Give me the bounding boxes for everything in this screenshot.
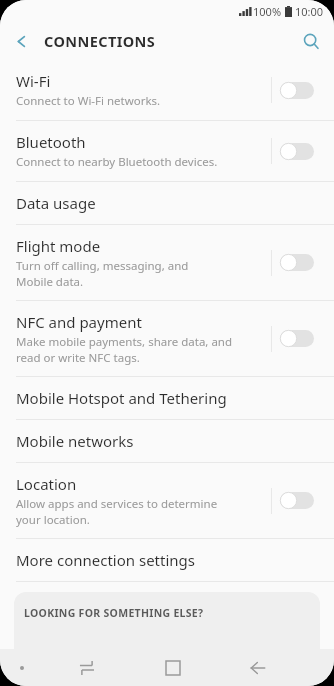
staticText: NFC and payment [16,312,142,332]
staticText: LOOKING FOR SOMETHING ELSE? [24,606,204,620]
staticText: Flight mode [16,236,101,256]
button[interactable]: NFC and payment toggle [272,324,322,353]
staticText: Allow apps and services to determine you… [16,496,218,527]
button[interactable]: Wi-Fi toggle [272,76,322,105]
button[interactable]: Search [294,24,328,58]
button[interactable]: NFC and payment [0,301,334,376]
button[interactable]: Back [4,24,38,58]
button[interactable]: Data usage [0,182,334,224]
button[interactable]: LOOKING FOR SOMETHING ELSE? [14,592,320,649]
staticText: 10:00 [295,4,324,19]
staticText: Mobile Hotspot and Tethering [16,388,227,408]
button[interactable]: Flight mode toggle [272,248,322,277]
staticText: Connect to nearby Bluetooth devices. [16,154,218,170]
button[interactable]: Bluetooth [0,121,334,181]
button[interactable]: Back [215,649,300,686]
staticText: CONNECTIONS [44,31,156,51]
staticText: More connection settings [16,550,195,570]
button[interactable]: Recents [44,649,130,686]
button[interactable]: Location toggle [272,486,322,515]
staticText: Data usage [16,193,96,213]
staticText: Connect to Wi-Fi networks. [16,93,161,109]
staticText: Wi-Fi [16,71,51,91]
staticText: Mobile networks [16,431,134,451]
staticText: Bluetooth [16,132,86,152]
button[interactable]: Bluetooth toggle [272,137,322,166]
button[interactable]: Mobile networks [0,420,334,462]
button[interactable]: Home [130,649,215,686]
staticText: Location [16,474,77,494]
button[interactable]: Wi-Fi [0,60,334,120]
staticText: Turn off calling, messaging, and Mobile … [16,258,189,289]
button[interactable]: More connection settings [0,539,334,581]
button[interactable]: Flight mode [0,225,334,300]
button[interactable]: Mobile Hotspot and Tethering [0,377,334,419]
staticText: Make mobile payments, share data, and re… [16,334,233,365]
button[interactable]: Location [0,463,334,538]
staticText: 100% [253,4,282,19]
